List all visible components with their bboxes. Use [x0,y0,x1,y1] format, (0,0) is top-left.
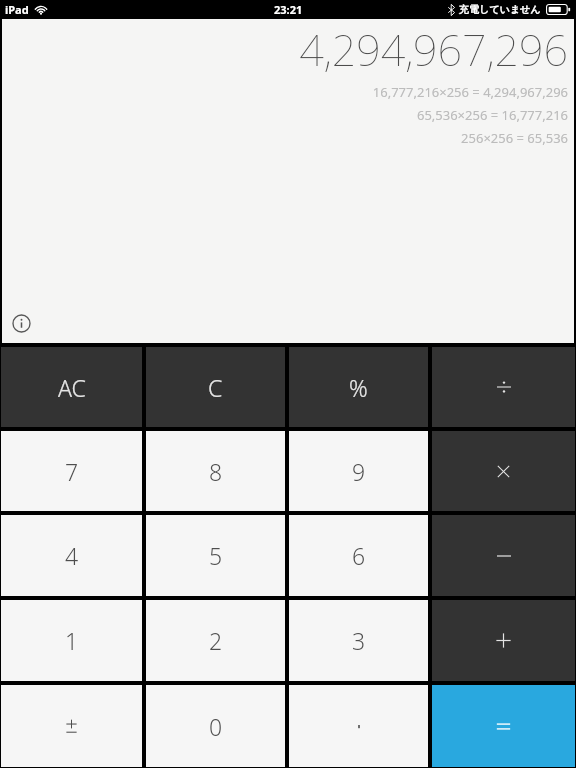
button[interactable] [432,600,575,681]
button[interactable]: 9 [289,431,428,511]
button[interactable]: 2 [146,600,285,681]
button[interactable]: % [289,347,428,427]
staticText: AC [58,372,86,403]
staticText: C [208,372,223,403]
staticText: 9 [352,456,366,487]
staticText: 16,777,216×256 = 4,294,967,296 [372,83,568,101]
staticText: 充電していません [459,3,541,16]
staticText: 4 [65,540,79,571]
staticText: 8 [209,456,223,487]
button[interactable]: 1 [1,600,142,681]
staticText: 23:21 [274,2,303,17]
button[interactable]: 4 [1,515,142,596]
button[interactable]: 0 [146,685,285,767]
button[interactable]: Info [9,311,33,335]
staticText: 2 [209,625,223,656]
button[interactable] [432,431,575,511]
button[interactable]: 6 [289,515,428,596]
staticText: 3 [352,625,366,656]
staticText: 6 [352,540,366,571]
button[interactable] [432,515,575,596]
button[interactable]: AC [1,347,142,427]
staticText: 65,536×256 = 16,777,216 [416,106,568,124]
staticText: 7 [65,456,79,487]
button[interactable] [432,347,575,427]
button[interactable] [1,685,142,767]
button[interactable]: 7 [1,431,142,511]
button[interactable]: 5 [146,515,285,596]
staticText: iPad [5,2,29,17]
button[interactable] [289,685,428,767]
button[interactable] [432,685,575,767]
button[interactable]: 3 [289,600,428,681]
staticText: 1 [65,625,79,656]
staticText: 5 [209,540,223,571]
staticText: 0 [209,711,223,742]
button[interactable]: C [146,347,285,427]
staticText: 4,294,967,296 [299,20,568,79]
staticText: % [349,372,368,403]
button[interactable]: 8 [146,431,285,511]
staticText: 256×256 = 65,536 [461,129,568,147]
